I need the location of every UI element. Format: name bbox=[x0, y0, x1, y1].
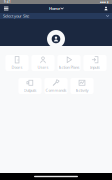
staticText: Commands bbox=[45, 87, 66, 93]
button[interactable]: Outputs bbox=[18, 78, 41, 94]
button[interactable]: Users bbox=[31, 55, 54, 71]
button[interactable]: Home bbox=[48, 5, 64, 12]
staticText: ▪▪▪ ▮ bbox=[100, 0, 108, 3]
staticText: Outputs bbox=[23, 87, 36, 93]
button[interactable]: Menu bbox=[2, 4, 10, 12]
staticText: Activity bbox=[75, 87, 88, 93]
staticText: Users bbox=[37, 64, 48, 70]
button[interactable]: Doors bbox=[5, 55, 28, 71]
button[interactable]: Inputs bbox=[83, 55, 106, 71]
staticText: Doors bbox=[11, 64, 22, 70]
button[interactable]: Account bbox=[102, 4, 110, 12]
button[interactable]: Action Plans bbox=[57, 55, 80, 71]
staticText: Inputs bbox=[90, 64, 100, 70]
staticText: Action Plans bbox=[58, 64, 79, 70]
button[interactable]: Commands bbox=[44, 78, 67, 94]
button[interactable]: Select your Site bbox=[0, 13, 112, 19]
button[interactable]: Activity bbox=[70, 78, 93, 94]
staticText: Home bbox=[49, 6, 60, 11]
staticText: Select your Site bbox=[3, 13, 29, 19]
staticText: 9:41 bbox=[4, 0, 11, 4]
